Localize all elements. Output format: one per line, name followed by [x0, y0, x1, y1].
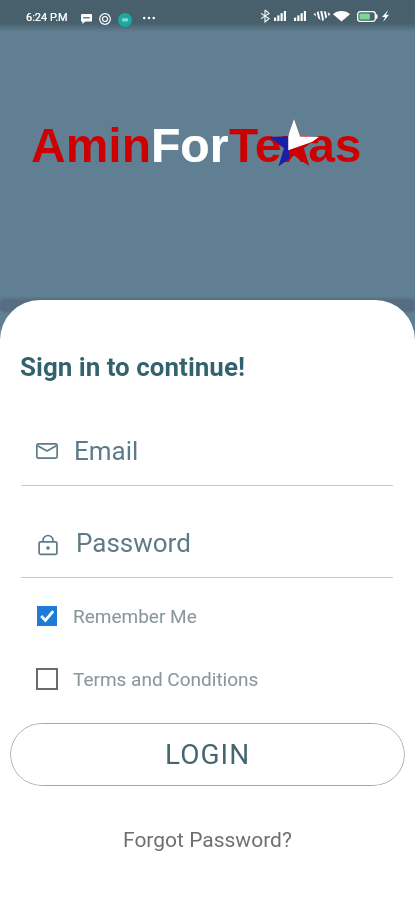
staticText: Texas [229, 119, 362, 173]
staticText: LOGIN [165, 738, 251, 771]
staticText: 6:24 P.M [26, 11, 68, 24]
staticText: Password [76, 528, 191, 558]
button[interactable]: Forgot Password? [115, 824, 300, 857]
staticText: For [151, 119, 229, 173]
staticText: Email [74, 436, 139, 466]
button[interactable]: LOGIN [10, 723, 405, 786]
staticText: Amin [31, 119, 151, 173]
button[interactable]: Email [0, 428, 415, 486]
button[interactable]: Terms and Conditions [0, 663, 415, 695]
button[interactable]: Password [0, 520, 415, 578]
staticText: Sign in to continue! [20, 352, 246, 382]
staticText: Remember Me [73, 605, 197, 627]
button[interactable]: Remember Me [0, 600, 415, 632]
staticText: Terms and Conditions [73, 668, 259, 690]
